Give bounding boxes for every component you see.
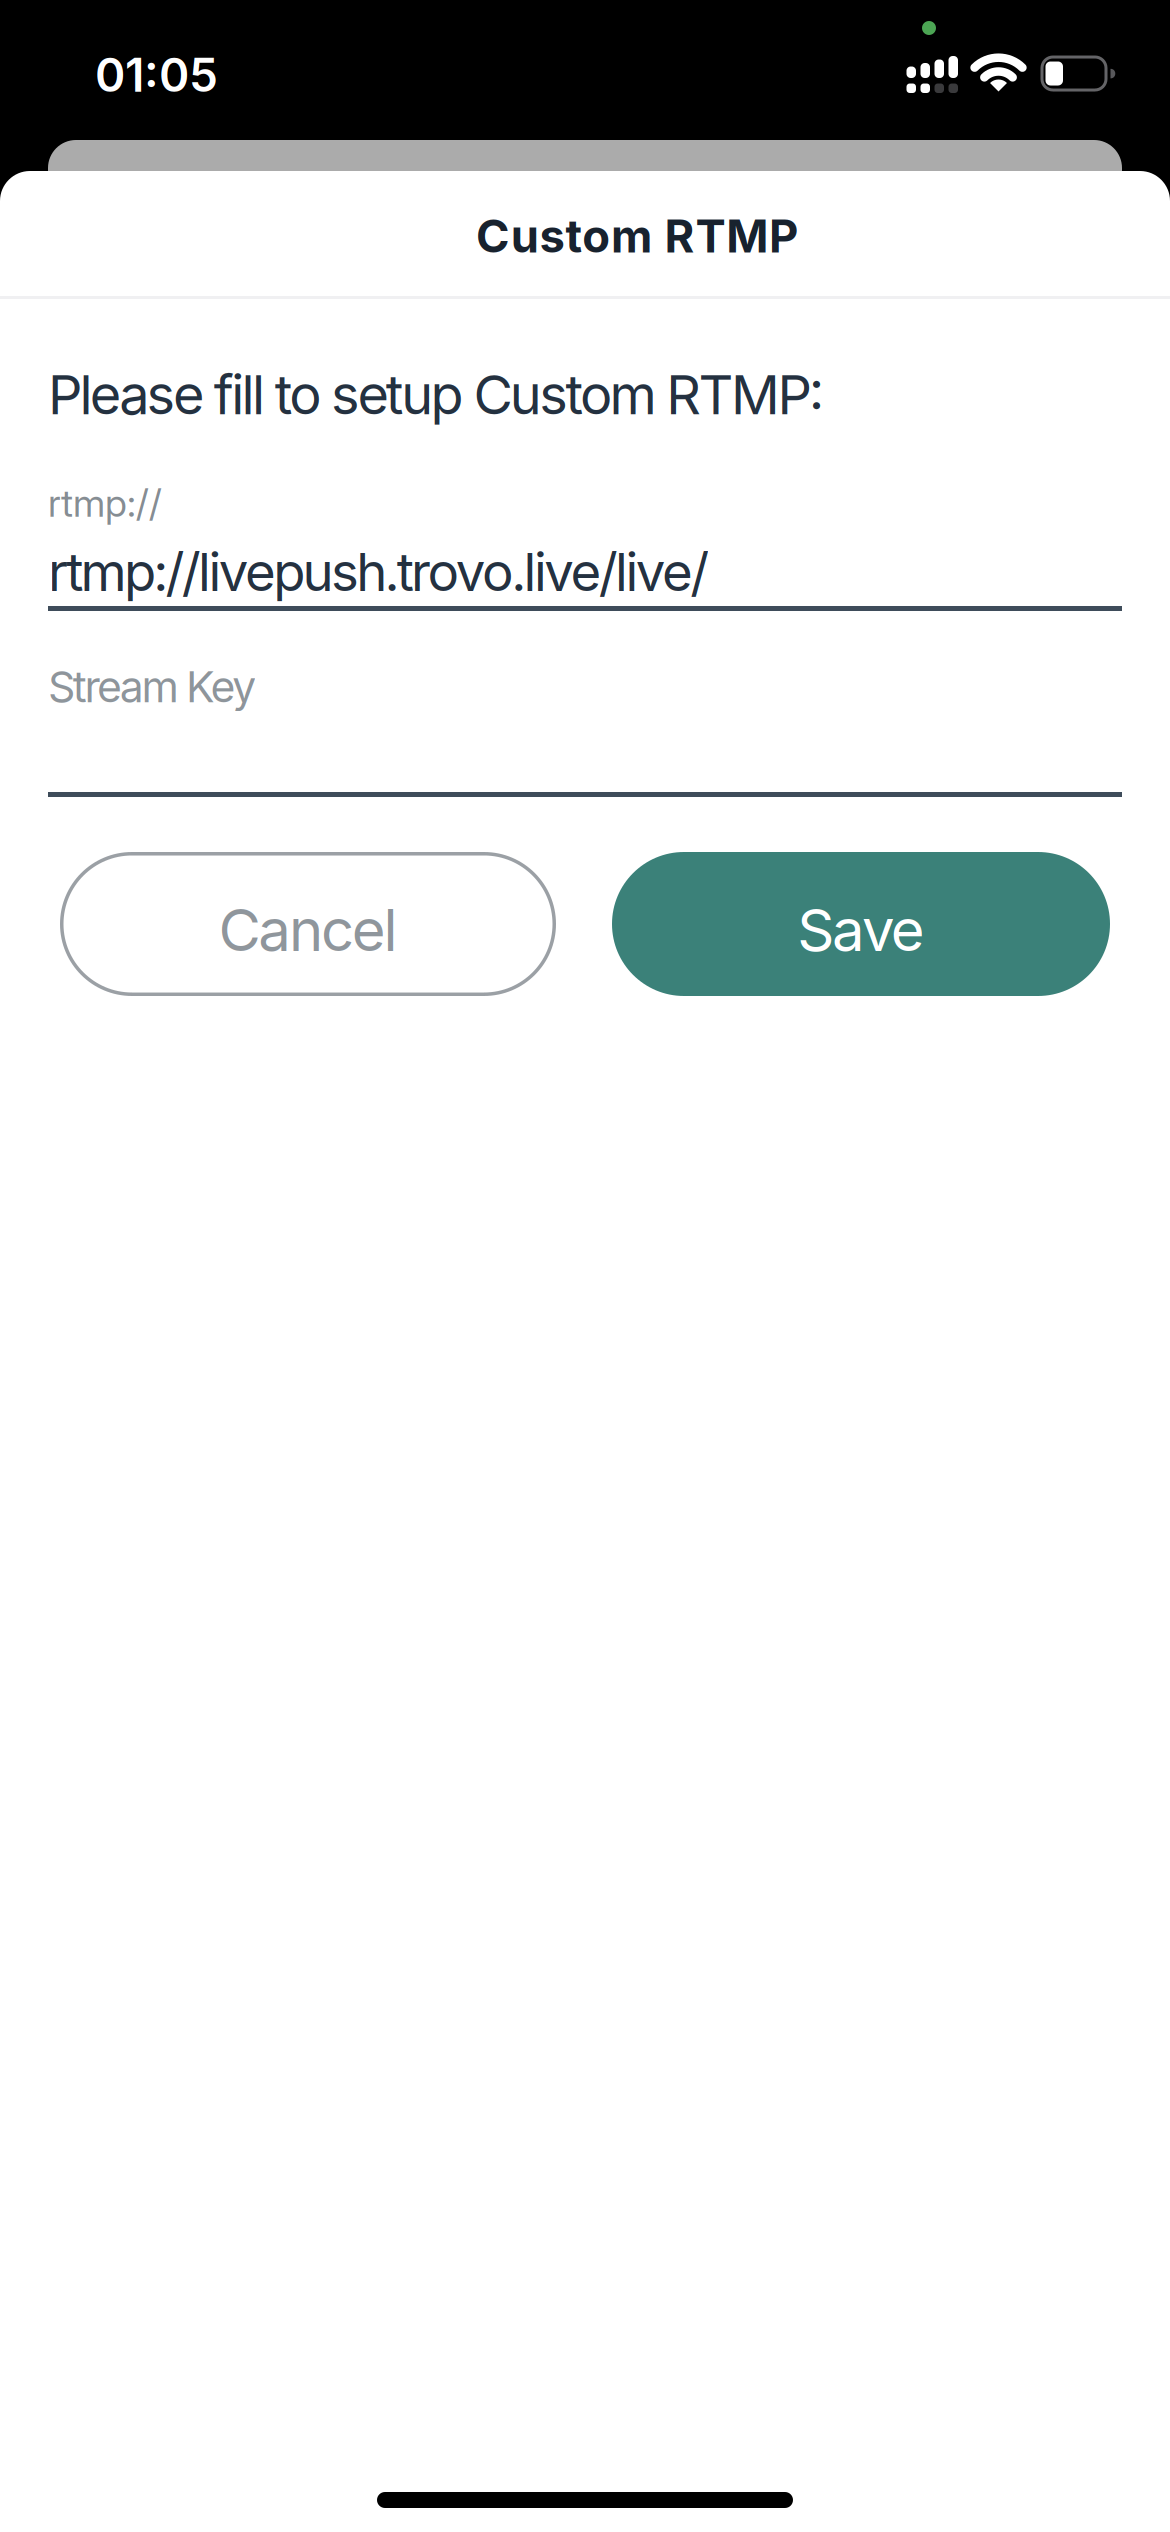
staticText: rtmp://livepush.trovo.live/live/ [48, 540, 709, 604]
button[interactable]: rtmp:// [48, 476, 1122, 611]
staticText: Save [797, 895, 925, 965]
staticText: Stream Key [48, 661, 256, 713]
staticText: 01:05 [95, 47, 218, 103]
staticText: rtmp:// [48, 480, 162, 526]
staticText: Cancel [218, 895, 397, 965]
button[interactable]: Save [612, 852, 1110, 996]
staticText: Please fill to setup Custom RTMP: [48, 362, 825, 427]
staticText: Custom RTMP [476, 209, 798, 263]
button[interactable]: Cancel [60, 852, 556, 996]
button[interactable]: Stream Key [48, 648, 1122, 797]
